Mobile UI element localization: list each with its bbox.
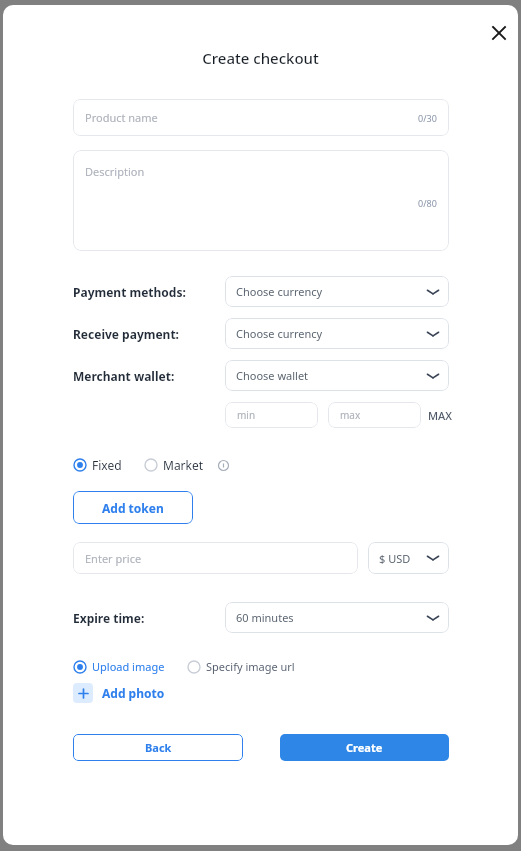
button[interactable]: Close — [484, 18, 514, 48]
staticText: Add photo — [102, 685, 165, 701]
staticText: Create — [346, 740, 383, 755]
button[interactable]: $ USD — [368, 542, 449, 574]
staticText: Fixed — [92, 457, 122, 473]
staticText: 60 minutes — [236, 610, 426, 625]
button[interactable]: Back — [73, 734, 243, 761]
staticText: Description — [85, 164, 145, 179]
button[interactable]: Info — [218, 460, 229, 471]
staticText: Receive payment: — [73, 326, 179, 342]
staticText: max — [340, 408, 409, 422]
button[interactable]: Enter price — [73, 542, 358, 574]
staticText: min — [237, 408, 306, 422]
staticText: Choose currency — [236, 284, 426, 299]
staticText: Merchant wallet: — [73, 368, 175, 384]
button[interactable]: Specify image url — [187, 657, 295, 676]
staticText: 0/80 — [418, 197, 437, 209]
staticText: Add token — [102, 500, 164, 516]
staticText: Upload image — [92, 659, 165, 674]
staticText: Expire time: — [73, 610, 145, 626]
button[interactable]: Choose currency — [225, 318, 449, 349]
button[interactable]: min — [225, 402, 318, 428]
button[interactable]: Upload image — [73, 657, 165, 676]
button[interactable]: Market — [144, 455, 204, 475]
staticText: Back — [145, 740, 172, 755]
staticText: 0/30 — [418, 112, 437, 124]
staticText: Payment methods: — [73, 284, 186, 300]
button[interactable]: Create — [280, 734, 449, 761]
staticText: Choose wallet — [236, 368, 426, 383]
staticText: Choose currency — [236, 326, 426, 341]
button[interactable]: Product name — [73, 99, 449, 136]
button[interactable]: Choose currency — [225, 276, 449, 307]
staticText: Product name — [85, 110, 418, 125]
staticText: Enter price — [85, 551, 346, 566]
staticText: $ USD — [379, 551, 426, 566]
button[interactable]: Add photo — [73, 683, 165, 703]
button[interactable]: Choose wallet — [225, 360, 449, 391]
button[interactable]: max — [328, 402, 421, 428]
staticText: Create checkout — [202, 48, 319, 68]
staticText: Market — [163, 457, 204, 473]
staticText: MAX — [428, 408, 453, 423]
button[interactable]: Description — [73, 150, 449, 251]
button[interactable]: Fixed — [73, 455, 122, 475]
staticText: Specify image url — [206, 659, 295, 674]
button[interactable]: Add token — [73, 491, 193, 524]
button[interactable]: 60 minutes — [225, 602, 449, 633]
